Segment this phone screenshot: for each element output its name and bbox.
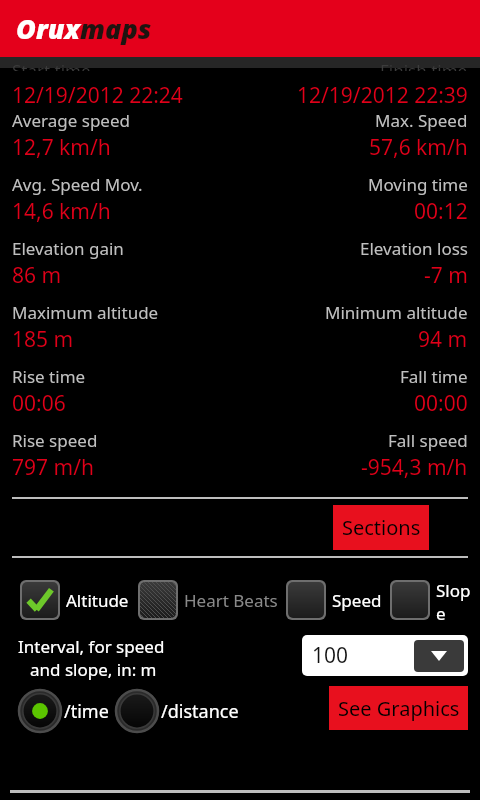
staticText: 00:12	[414, 197, 468, 226]
staticText: 12/19/2012 22:24	[12, 81, 183, 109]
staticText: 86 m	[12, 261, 62, 290]
staticText: maps	[80, 10, 152, 47]
staticText: Elevation loss	[360, 237, 468, 260]
button[interactable]: Heart Beats	[138, 580, 278, 620]
staticText: 14,6 km/h	[12, 197, 111, 226]
staticText: -7 m	[424, 261, 468, 290]
staticText: Rise time	[12, 365, 86, 388]
staticText: Altitude	[66, 589, 129, 612]
staticText: Elevation gain	[12, 237, 124, 260]
staticText: Rise speed	[12, 429, 98, 452]
staticText: 57,6 km/h	[369, 133, 468, 162]
staticText: 797 m/h	[12, 453, 94, 482]
button[interactable]: /distance	[115, 689, 239, 733]
button[interactable]: Altitude	[20, 580, 129, 620]
staticText: Avg. Speed Mov.	[12, 173, 143, 196]
button[interactable]: Sections	[333, 505, 429, 550]
staticText: Heart Beats	[184, 589, 278, 612]
staticText: Finish time	[380, 59, 468, 71]
button[interactable]: /time	[18, 689, 109, 733]
staticText: 94 m	[418, 325, 468, 354]
staticText: Slope	[436, 579, 480, 621]
staticText: Interval, for speed	[18, 635, 165, 658]
staticText: Moving time	[368, 173, 468, 196]
staticText: 100	[312, 641, 349, 670]
staticText: Orux	[16, 10, 80, 47]
button[interactable]: Speed	[286, 580, 382, 620]
other: Open interval dropdown	[414, 640, 464, 672]
staticText: /distance	[161, 699, 239, 724]
button[interactable]: See Graphics	[329, 686, 468, 730]
staticText: and slope, in: m	[30, 658, 157, 681]
staticText: Fall speed	[388, 429, 468, 452]
button[interactable]: 100	[302, 635, 468, 676]
staticText: Minimum altitude	[325, 301, 468, 324]
staticText: Start time	[12, 59, 91, 71]
staticText: 12,7 km/h	[12, 133, 111, 162]
staticText: 12/19/2012 22:39	[297, 81, 468, 109]
staticText: 00:06	[12, 389, 66, 418]
staticText: 00:00	[414, 389, 468, 418]
staticText: Sections	[342, 514, 421, 541]
staticText: Maximum altitude	[12, 301, 159, 324]
staticText: Average speed	[12, 109, 130, 132]
staticText: /time	[64, 699, 109, 724]
staticText: 185 m	[12, 325, 74, 354]
staticText: Max. Speed	[375, 109, 468, 132]
staticText: Speed	[332, 589, 382, 612]
staticText: -954,3 m/h	[361, 453, 468, 482]
staticText: Fall time	[400, 365, 468, 388]
button[interactable]: Slope	[390, 579, 480, 621]
staticText: See Graphics	[338, 695, 460, 722]
